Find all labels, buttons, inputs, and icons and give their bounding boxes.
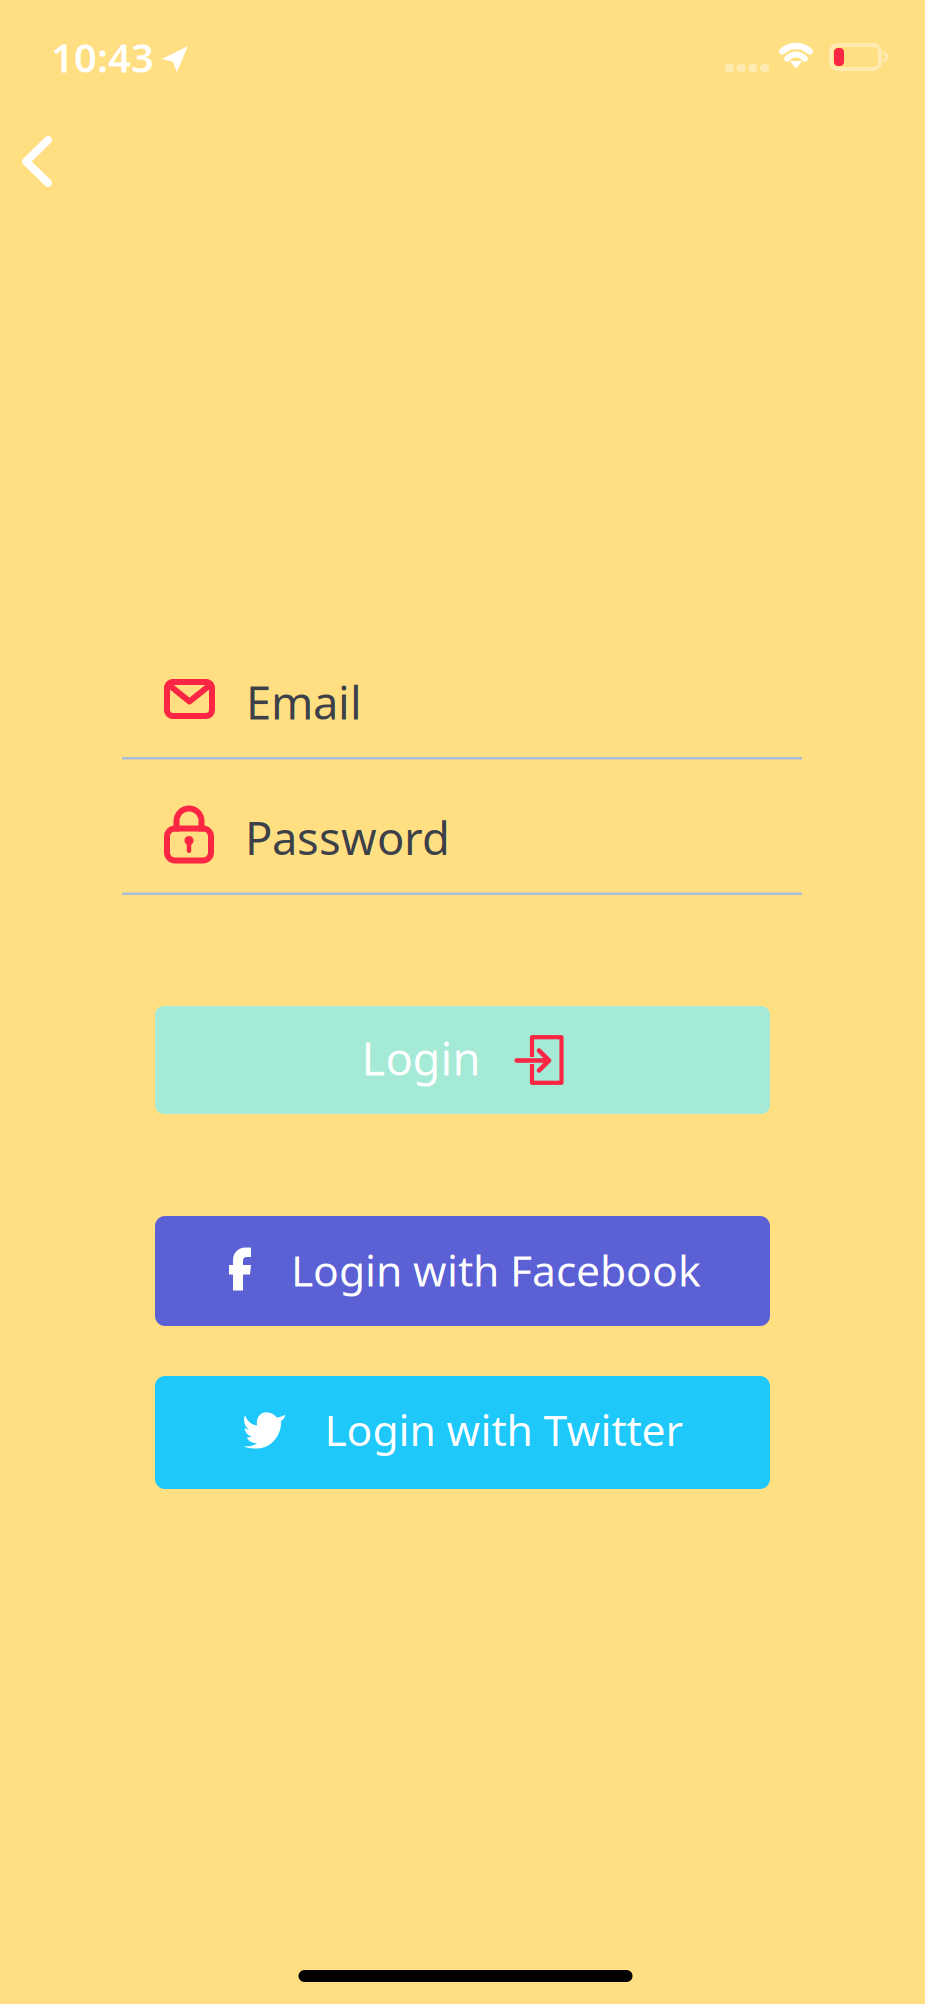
button[interactable]: Back <box>0 114 92 213</box>
button[interactable]: Login <box>155 1006 770 1114</box>
staticText: Login with Twitter <box>324 1401 683 1458</box>
staticText: Login <box>361 1028 480 1088</box>
staticText: Password <box>245 807 450 868</box>
staticText: Email <box>246 672 362 732</box>
button[interactable]: Email <box>0 657 925 759</box>
button[interactable]: Login with Facebook <box>155 1216 770 1326</box>
button[interactable]: Login with Twitter <box>155 1376 770 1489</box>
staticText: 10:43 <box>51 30 154 83</box>
button[interactable]: Password <box>0 792 925 895</box>
staticText: Login with Facebook <box>291 1242 701 1298</box>
